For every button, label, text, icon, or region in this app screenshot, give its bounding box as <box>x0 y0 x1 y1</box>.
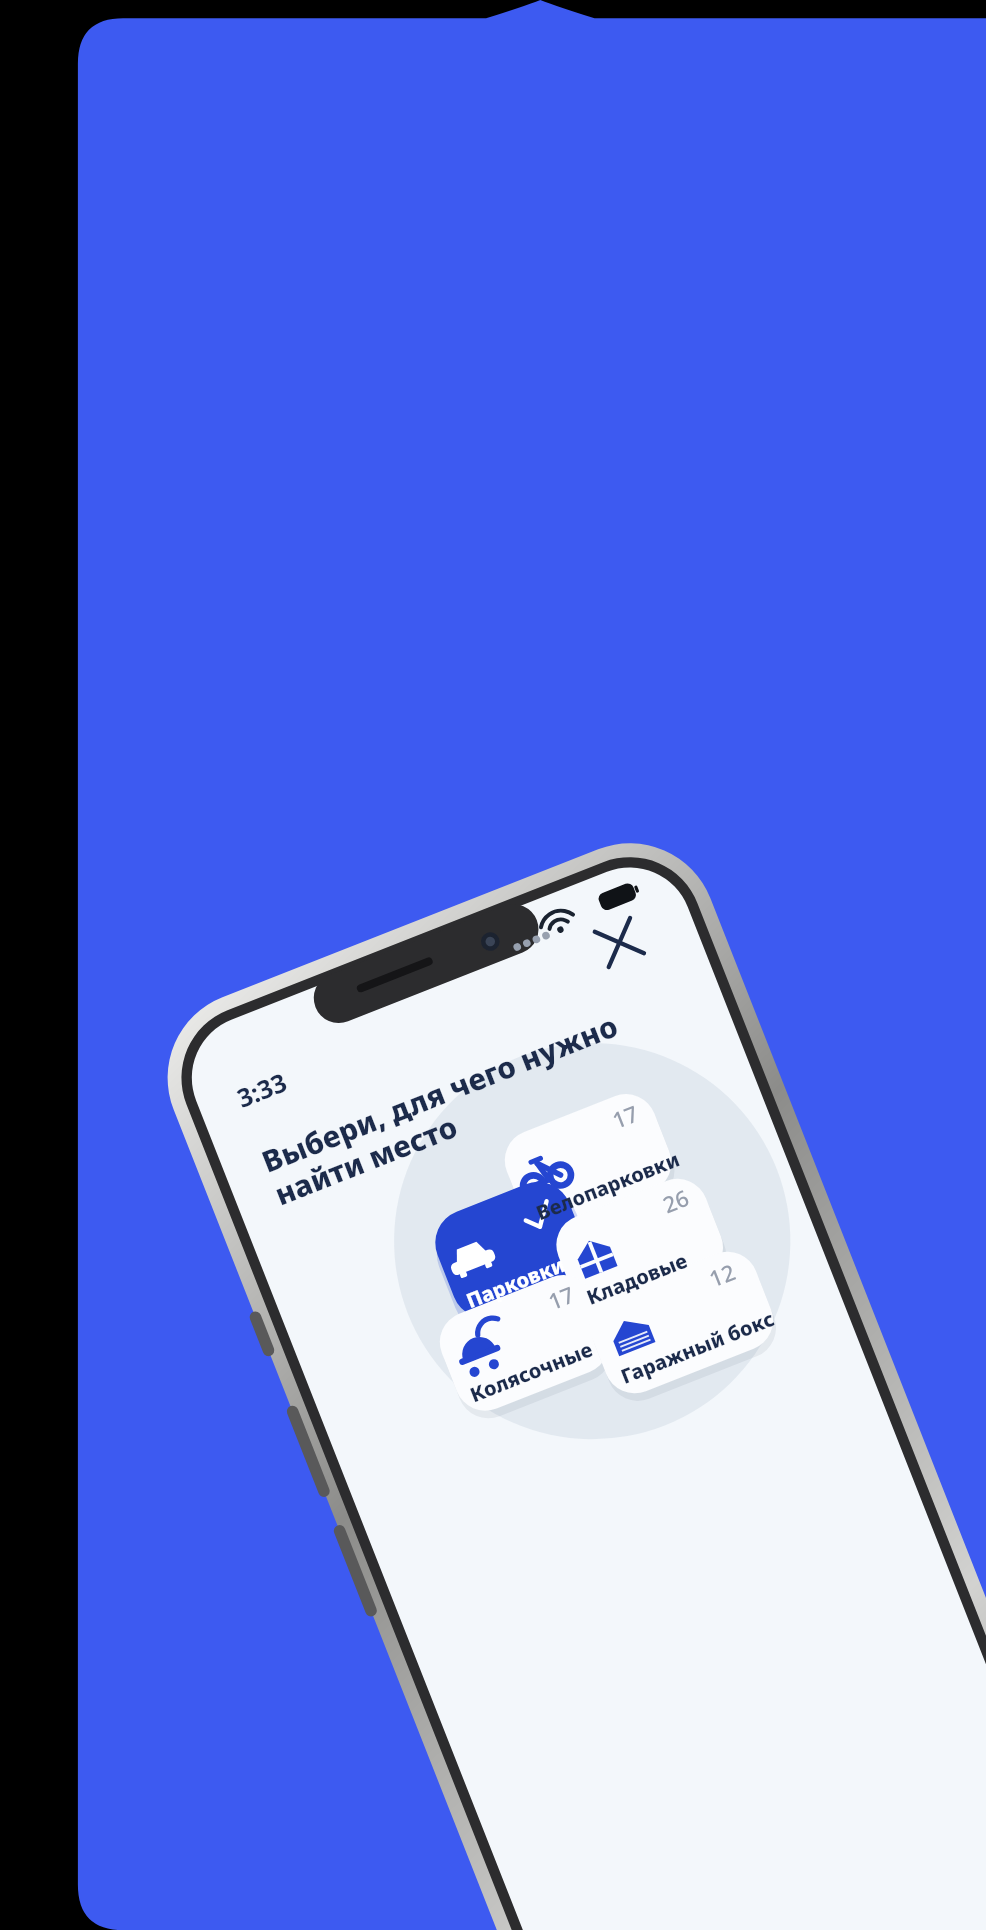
button[interactable]: Колясочные <box>430 1266 618 1420</box>
button[interactable]: Парковки <box>425 1172 598 1328</box>
staticText: 17 <box>544 1278 579 1316</box>
staticText: 26 <box>658 1182 693 1219</box>
staticText: Велопарковки <box>532 1146 683 1226</box>
staticText: Колясочные <box>466 1335 597 1408</box>
button[interactable]: Закрыть <box>583 907 662 986</box>
staticText: Кладовые <box>582 1246 692 1311</box>
staticText: Выбери, для чего нужно найти место <box>256 969 726 1214</box>
staticText: 12 <box>705 1256 740 1293</box>
staticText: 3:33 <box>232 1064 292 1116</box>
button[interactable]: Гаражный бокс <box>580 1242 782 1402</box>
button[interactable]: Велопарковки <box>496 1085 682 1238</box>
staticText: Гаражный бокс <box>617 1305 778 1390</box>
button[interactable]: Кладовые <box>547 1169 732 1323</box>
staticText: Парковки <box>462 1251 569 1314</box>
staticText: 17 <box>608 1097 643 1135</box>
